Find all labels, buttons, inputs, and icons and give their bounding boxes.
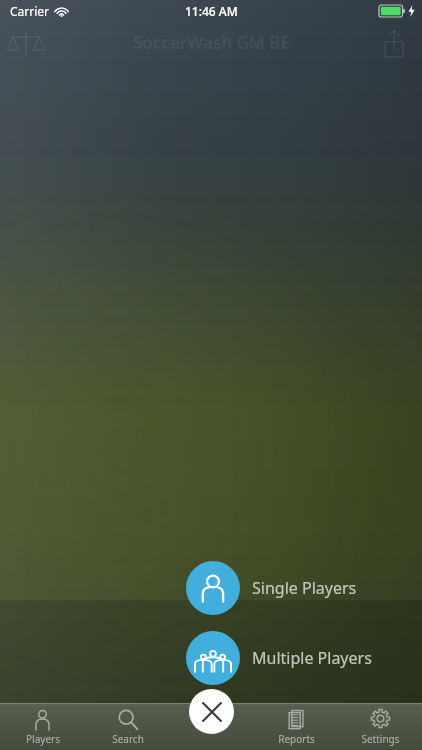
- staticText: Settings: [361, 732, 400, 746]
- button[interactable]: Settings: [338, 703, 422, 750]
- staticText: Players: [26, 732, 60, 746]
- staticText: Multiple Players: [252, 647, 372, 669]
- staticText: SoccerWash GM BE: [133, 31, 290, 54]
- button[interactable]: Single Players: [186, 561, 357, 615]
- staticText: Reports: [278, 732, 315, 746]
- staticText: Search: [112, 732, 144, 746]
- button[interactable]: Players: [0, 703, 85, 750]
- button[interactable]: Close: [189, 689, 234, 734]
- staticText: 11:46 AM: [185, 3, 238, 19]
- button[interactable]: Search: [85, 703, 170, 750]
- button[interactable]: Reports: [254, 703, 338, 750]
- button[interactable]: Multiple Players: [186, 631, 372, 685]
- staticText: Carrier: [10, 3, 50, 19]
- staticText: Single Players: [252, 577, 357, 599]
